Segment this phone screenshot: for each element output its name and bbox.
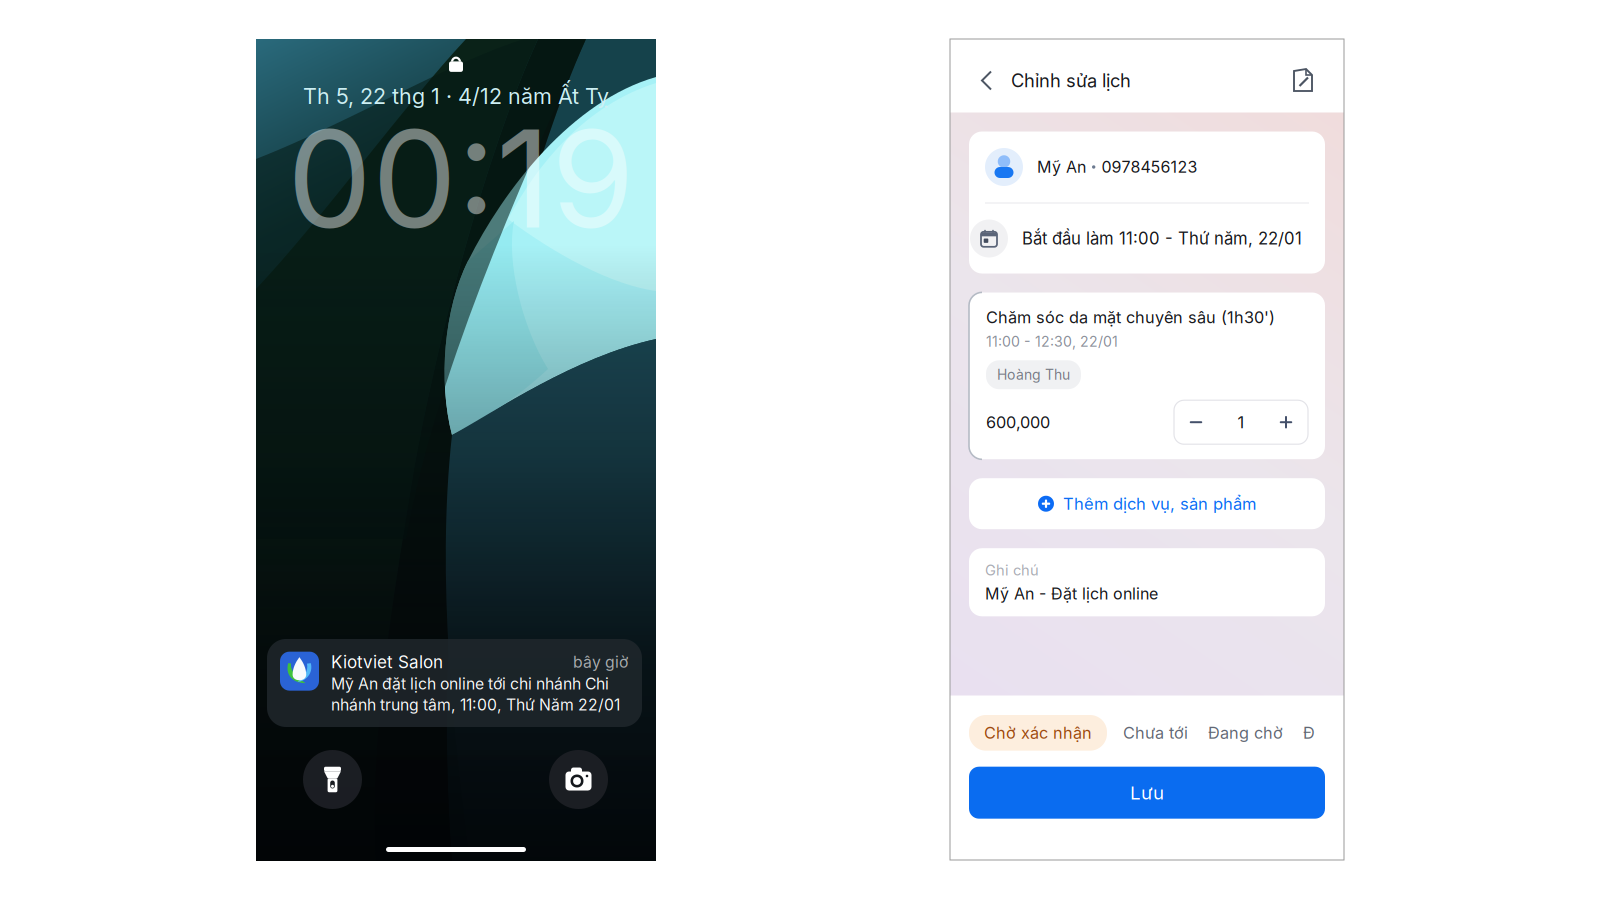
staticText: nhánh trung tâm, 11:00, Thứ Năm 22/01: [331, 695, 620, 714]
button[interactable]: Chờ xác nhận: [969, 715, 1107, 751]
staticText: bây giờ: [573, 652, 628, 671]
staticText: Mỹ An: [1037, 157, 1086, 177]
staticText: Chỉnh sửa lịch: [1011, 69, 1131, 91]
staticText: Th 5, 22 thg 1 · 4/12 năm Ất Tỵ: [303, 83, 609, 109]
button[interactable]: Ghi chú: [969, 548, 1325, 616]
button[interactable]: Thêm dịch vụ, sản phẩm: [969, 478, 1325, 529]
staticText: Lưu: [1130, 781, 1164, 804]
button[interactable]: Decrease quantity: [1174, 400, 1218, 444]
staticText: Kiotviet Salon: [331, 652, 443, 672]
button[interactable]: Đang chờ: [1208, 715, 1283, 751]
staticText: Chăm sóc da mặt chuyên sâu (1h30'): [986, 307, 1275, 327]
staticText: 0978456123: [1101, 157, 1197, 177]
button[interactable]: Flashlight: [303, 750, 362, 809]
staticText: Chưa tới: [1123, 723, 1188, 743]
staticText: 600,000: [986, 412, 1050, 432]
staticText: Ghi chú: [985, 561, 1039, 579]
button[interactable]: Camera: [549, 750, 608, 809]
staticText: 1: [1237, 412, 1244, 432]
staticText: Mỹ An - Đặt lịch online: [985, 584, 1158, 603]
staticText: 11:00 - 12:30, 22/01: [986, 333, 1118, 350]
button[interactable]: Đ: [1303, 715, 1315, 751]
staticText: Đang chờ: [1208, 723, 1283, 743]
staticText: Hoàng Thu: [997, 366, 1070, 383]
button[interactable]: Edit: [1289, 58, 1318, 102]
button[interactable]: Lưu: [969, 767, 1325, 819]
staticText: 00:19: [287, 97, 635, 260]
staticText: Chờ xác nhận: [984, 723, 1092, 743]
button[interactable]: Back: [972, 58, 1001, 102]
button[interactable]: Chưa tới: [1123, 715, 1188, 751]
staticText: Đ: [1303, 723, 1315, 743]
staticText: Bắt đầu làm 11:00 - Thứ năm, 22/01: [1022, 228, 1302, 249]
staticText: Mỹ An đặt lịch online tới chi nhánh Chi: [331, 674, 609, 693]
staticText: Thêm dịch vụ, sản phẩm: [1063, 494, 1256, 514]
button[interactable]: Bắt đầu làm 11:00 - Thứ năm, 22/01: [969, 203, 1325, 273]
button[interactable]: Mỹ An: [969, 131, 1325, 202]
button[interactable]: Increase quantity: [1264, 400, 1308, 444]
